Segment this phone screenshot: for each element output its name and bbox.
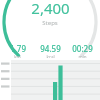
button[interactable]: 94.59 bbox=[35, 43, 66, 58]
staticText: 94.59 bbox=[40, 43, 61, 54]
staticText: Steps bbox=[42, 19, 58, 27]
staticText: 2,400 bbox=[31, 0, 70, 18]
button[interactable]: 2,400 bbox=[0, 0, 100, 42]
staticText: km bbox=[14, 54, 21, 58]
staticText: 00:29 bbox=[72, 43, 93, 54]
staticText: 1.79 bbox=[10, 43, 26, 54]
button[interactable]: 00:29 bbox=[67, 43, 98, 58]
button[interactable]: Activity chart bbox=[0, 60, 100, 100]
staticText: kcal bbox=[46, 54, 55, 58]
button[interactable]: 1.79 bbox=[2, 43, 33, 58]
staticText: min bbox=[78, 54, 87, 58]
